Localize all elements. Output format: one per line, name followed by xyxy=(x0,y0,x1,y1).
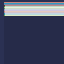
button[interactable] xyxy=(4,15,64,16)
button[interactable] xyxy=(4,10,64,11)
button[interactable] xyxy=(4,13,64,14)
button[interactable] xyxy=(4,14,64,15)
button[interactable] xyxy=(4,12,64,13)
button[interactable] xyxy=(4,7,64,8)
button[interactable] xyxy=(4,5,64,6)
button[interactable] xyxy=(4,9,64,10)
button[interactable] xyxy=(4,8,64,9)
button[interactable] xyxy=(4,6,64,7)
button[interactable] xyxy=(4,11,64,12)
